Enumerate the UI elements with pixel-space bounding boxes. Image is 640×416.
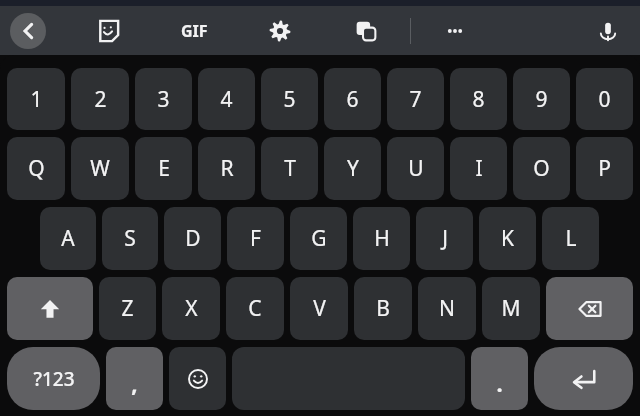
button[interactable]: 6 [324,68,381,130]
staticText: Z [121,294,134,323]
button[interactable]: Backspace [546,277,633,340]
button[interactable]: G [290,207,347,270]
button[interactable]: Shift [7,277,93,340]
button[interactable]: I [450,137,507,200]
button[interactable]: Translate [344,9,388,53]
button[interactable]: S [102,207,158,270]
button[interactable]: N [418,277,476,340]
button[interactable]: X [162,277,220,340]
staticText: 4 [220,85,233,114]
button[interactable]: U [387,137,444,200]
staticText: E [158,154,170,183]
button[interactable]: 8 [450,68,507,130]
staticText: I [475,154,483,183]
staticText: N [439,294,455,323]
staticText: L [565,224,577,253]
staticText: Y [347,154,359,183]
staticText: Q [28,154,45,183]
button[interactable]: ?123 [7,347,100,410]
button[interactable]: A [40,207,96,270]
button[interactable]: 4 [198,68,255,130]
button[interactable]: Q [7,137,65,200]
button[interactable]: H [353,207,410,270]
button[interactable]: V [290,277,348,340]
staticText: H [374,224,390,253]
staticText: X [185,294,198,323]
button[interactable]: 0 [576,68,633,130]
button[interactable]: Space [232,347,465,410]
button[interactable]: W [71,137,129,200]
staticText: B [376,294,390,323]
button[interactable]: 1 [7,68,65,130]
staticText: GIF [181,20,208,42]
button[interactable]: Back [10,13,46,49]
staticText: 8 [472,85,485,114]
staticText: 2 [94,85,107,114]
button[interactable]: C [226,277,284,340]
button[interactable]: T [261,137,318,200]
button[interactable]: M [482,277,540,340]
button[interactable]: Voice input [586,9,630,53]
staticText: , [131,368,138,398]
staticText: P [598,154,611,183]
button[interactable]: Stickers [86,9,130,53]
staticText: K [501,224,514,253]
button[interactable]: Y [324,137,381,200]
staticText: 0 [598,85,611,114]
button[interactable]: L [542,207,599,270]
staticText: J [442,224,448,253]
staticText: D [185,224,201,253]
staticText: A [61,224,75,253]
button[interactable]: 7 [387,68,444,130]
staticText: F [250,224,261,253]
staticText: 7 [409,85,422,114]
button[interactable]: 9 [513,68,570,130]
button[interactable]: Emoji [169,347,226,410]
button[interactable]: Enter [534,347,633,410]
button[interactable]: Z [99,277,156,340]
button[interactable]: 2 [71,68,129,130]
staticText: R [220,154,234,183]
staticText: M [501,294,521,323]
button[interactable]: Settings [258,9,302,53]
button[interactable]: P [576,137,633,200]
staticText: S [124,224,136,253]
staticText: V [313,294,326,323]
button[interactable]: O [513,137,570,200]
staticText: G [311,224,327,253]
button[interactable]: F [227,207,284,270]
button[interactable]: , [106,347,163,410]
button[interactable]: . [471,347,528,410]
staticText: W [90,154,110,183]
staticText: 5 [283,85,296,114]
staticText: 3 [157,85,170,114]
button[interactable]: B [354,277,412,340]
button[interactable]: GIF [172,9,216,53]
staticText: . [496,368,503,398]
button[interactable]: E [135,137,192,200]
button[interactable]: D [164,207,221,270]
staticText: 1 [30,85,43,114]
staticText: ?123 [33,366,75,392]
button[interactable]: K [479,207,536,270]
button[interactable]: J [416,207,473,270]
staticText: T [284,154,296,183]
button[interactable]: More options [433,9,477,53]
button[interactable]: 5 [261,68,318,130]
staticText: O [533,154,550,183]
staticText: 6 [346,85,359,114]
staticText: 9 [535,85,548,114]
staticText: C [248,294,262,323]
button[interactable]: 3 [135,68,192,130]
staticText: U [408,154,424,183]
button[interactable]: R [198,137,255,200]
